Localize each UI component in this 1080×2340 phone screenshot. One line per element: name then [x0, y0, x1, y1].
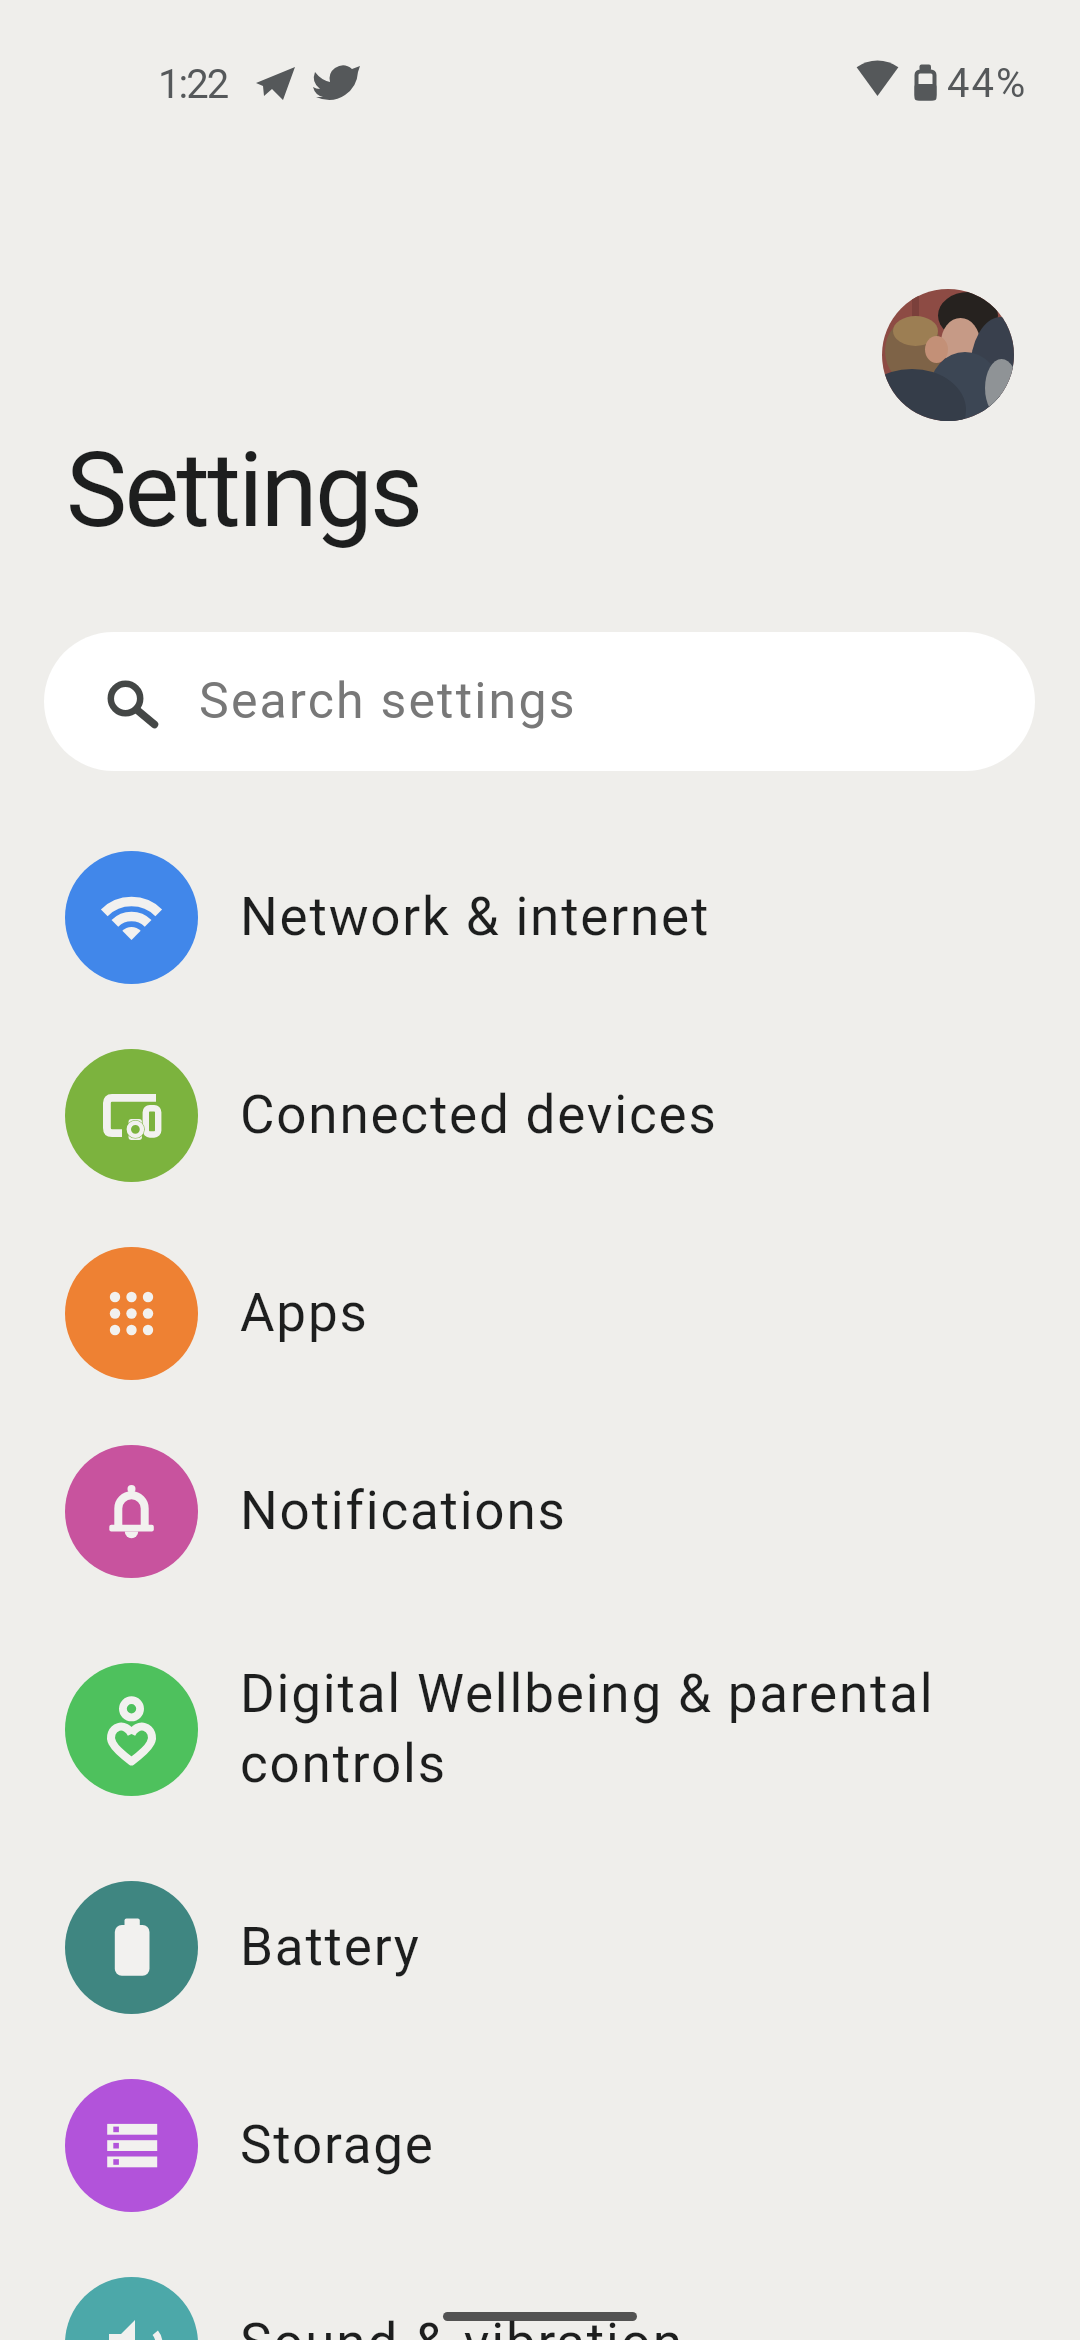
staticText: 44%	[947, 60, 1028, 107]
staticText: Sound & vibration	[240, 2312, 684, 2340]
staticText: Digital Wellbeing & parental controls	[240, 1663, 935, 1795]
button[interactable]: Network & internet	[0, 818, 1080, 1016]
button[interactable]: Apps	[0, 1214, 1080, 1412]
button[interactable]	[882, 289, 1014, 421]
staticText: 1:22	[158, 61, 228, 108]
staticText: Storage	[240, 2114, 435, 2176]
staticText: Apps	[240, 1282, 369, 1344]
staticText: Search settings	[199, 672, 577, 731]
button[interactable]: Storage	[0, 2046, 1080, 2244]
staticText: Settings	[66, 430, 421, 551]
staticText: Connected devices	[240, 1084, 718, 1146]
button[interactable]: Digital Wellbeing & parental controls	[0, 1610, 1080, 1848]
button[interactable]: Battery	[0, 1848, 1080, 2046]
staticText: Notifications	[240, 1480, 567, 1542]
staticText: Battery	[240, 1916, 421, 1978]
button[interactable]: Notifications	[0, 1412, 1080, 1610]
staticText: Network & internet	[240, 886, 711, 948]
button[interactable]: Search settings	[44, 632, 1035, 771]
button[interactable]: Sound & vibration	[0, 2244, 1080, 2340]
button[interactable]: Connected devices	[0, 1016, 1080, 1214]
